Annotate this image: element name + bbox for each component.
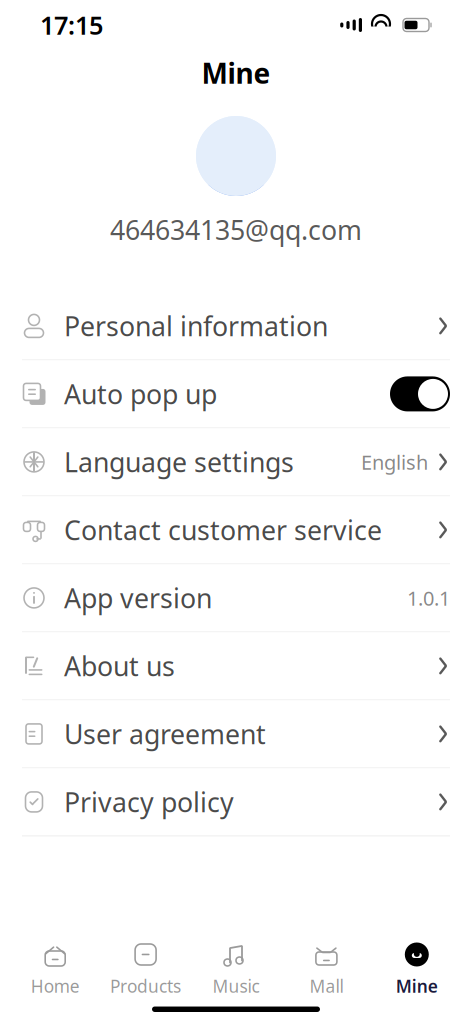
- staticText: Mall: [309, 974, 343, 997]
- button[interactable]: Home: [10, 937, 100, 1001]
- staticText: Contact customer service: [64, 512, 382, 548]
- button[interactable]: App version: [0, 564, 472, 632]
- staticText: Products: [110, 974, 181, 997]
- staticText: 1.0.1: [407, 585, 450, 611]
- staticText: User agreement: [64, 716, 266, 752]
- button[interactable]: Personal information: [0, 292, 472, 360]
- staticText: Mine: [396, 974, 438, 997]
- staticText: Music: [212, 974, 259, 997]
- staticText: Language settings: [64, 444, 294, 480]
- button[interactable]: User agreement: [0, 700, 472, 768]
- staticText: English: [361, 449, 428, 475]
- staticText: Home: [31, 974, 80, 997]
- staticText: Auto pop up: [64, 376, 217, 412]
- staticText: Personal information: [64, 308, 328, 344]
- button[interactable]: Auto pop up: [0, 360, 472, 428]
- button[interactable]: About us: [0, 632, 472, 700]
- button[interactable]: Language settings: [0, 428, 472, 496]
- button[interactable]: Mine: [372, 937, 462, 1001]
- staticText: 17:15: [40, 8, 103, 42]
- button[interactable]: Mall: [281, 937, 372, 1001]
- staticText: 464634135@qq.com: [110, 212, 362, 247]
- staticText: Privacy policy: [64, 784, 234, 820]
- button[interactable]: Contact customer service: [0, 496, 472, 564]
- staticText: About us: [64, 648, 175, 684]
- button[interactable]: Products: [100, 937, 191, 1001]
- button[interactable]: Privacy policy: [0, 768, 472, 836]
- staticText: Mine: [201, 54, 270, 92]
- staticText: App version: [64, 580, 212, 616]
- button[interactable]: Music: [191, 937, 281, 1001]
